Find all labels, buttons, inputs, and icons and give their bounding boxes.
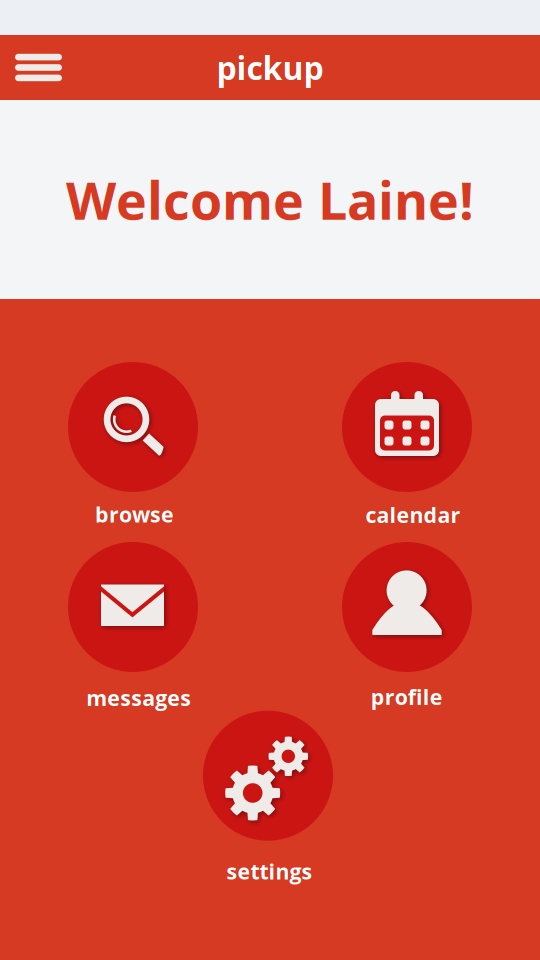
button[interactable]: profile <box>0 0 540 960</box>
button[interactable]: calendar <box>0 0 540 960</box>
button[interactable]: Menu <box>11 50 66 85</box>
staticText: browse <box>95 500 174 529</box>
button[interactable]: settings <box>0 0 540 960</box>
staticText: calendar <box>365 500 460 529</box>
staticText: messages <box>86 683 191 712</box>
staticText: profile <box>371 682 443 711</box>
staticText: pickup <box>216 46 323 89</box>
staticText: settings <box>227 857 313 886</box>
staticText: Welcome Laine! <box>66 164 474 235</box>
button[interactable]: messages <box>0 0 540 960</box>
button[interactable]: browse <box>0 0 540 960</box>
